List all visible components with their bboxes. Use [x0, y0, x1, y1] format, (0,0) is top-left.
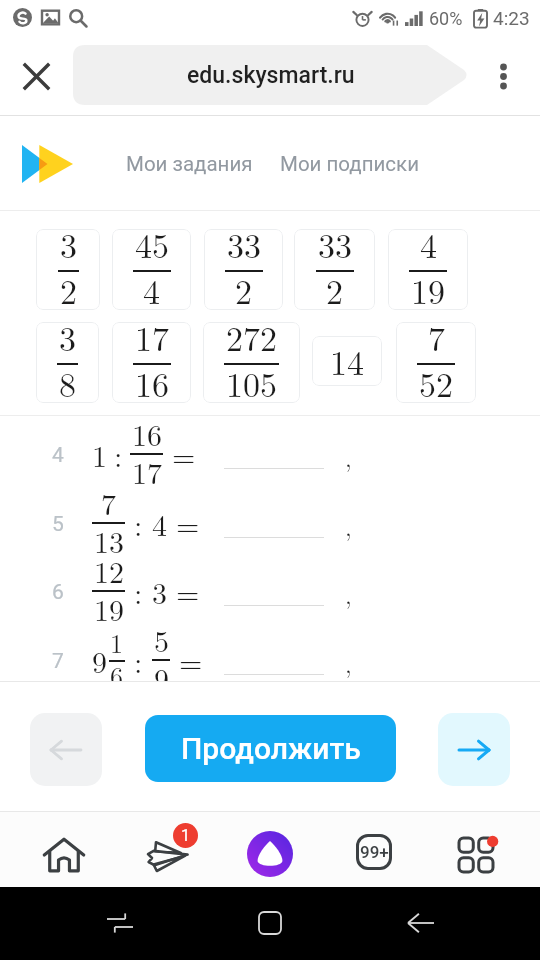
staticText: 9	[92, 639, 107, 682]
button[interactable]: Next	[438, 713, 510, 786]
staticText: 13	[94, 519, 124, 562]
staticText: edu.skysmart.ru	[187, 62, 355, 89]
button[interactable]: Home	[246, 899, 294, 947]
staticText: :	[134, 639, 143, 682]
button[interactable]: Messages	[136, 821, 200, 885]
button[interactable]: Мои подписки	[280, 152, 419, 176]
button[interactable]: Back	[397, 899, 445, 947]
staticText: 16	[132, 412, 162, 455]
button[interactable]: Alice assistant	[240, 824, 300, 884]
staticText: 7	[428, 322, 445, 361]
button[interactable]: 33	[294, 229, 375, 310]
staticText: 2	[235, 266, 252, 310]
staticText: 105	[226, 359, 277, 403]
staticText: =	[172, 433, 196, 476]
staticText: 3	[152, 570, 167, 613]
staticText: 17	[132, 450, 162, 493]
staticText: :	[114, 433, 123, 476]
staticText: 5	[154, 618, 169, 661]
button[interactable]: Продолжить	[145, 715, 396, 782]
staticText: 14	[330, 337, 364, 385]
staticText: 33	[227, 229, 261, 268]
staticText: =	[179, 639, 203, 682]
staticText: 4	[52, 443, 64, 468]
staticText: 99+	[360, 842, 389, 862]
button[interactable]: edu.skysmart.ru	[73, 45, 469, 105]
staticText: ,	[345, 577, 352, 611]
staticText: 7	[52, 649, 64, 674]
staticText: 5	[52, 512, 64, 537]
button[interactable]: 272	[203, 322, 300, 403]
staticText: :	[134, 570, 143, 613]
button[interactable]: More options	[477, 50, 529, 102]
staticText: 1	[181, 826, 190, 845]
button[interactable]: 33	[204, 229, 283, 310]
staticText: 8	[59, 359, 76, 403]
button[interactable]: Apps menu	[446, 825, 506, 885]
staticText: 16	[135, 359, 169, 403]
button[interactable]: Recents	[96, 899, 144, 947]
staticText: 52	[419, 359, 453, 403]
staticText: 19	[411, 266, 445, 310]
staticText: 7	[101, 481, 116, 524]
staticText: 12	[94, 549, 124, 592]
staticText: 6	[52, 580, 64, 605]
staticText: 1	[92, 433, 107, 476]
staticText: 45	[135, 229, 169, 268]
button[interactable]: Мои задания	[126, 152, 253, 176]
button[interactable]: Close tab	[12, 52, 60, 100]
button[interactable]: 3	[36, 229, 100, 310]
staticText: =	[176, 502, 200, 545]
button[interactable]: 4	[388, 229, 468, 310]
staticText: =	[176, 570, 200, 613]
staticText: 19	[94, 587, 124, 630]
staticText: 3	[59, 322, 76, 361]
staticText: 4	[143, 266, 160, 310]
button[interactable]: Home	[34, 825, 94, 885]
staticText: 2	[326, 266, 343, 310]
staticText: ,	[345, 646, 352, 680]
button[interactable]: Tabs	[344, 822, 404, 882]
staticText: 4	[152, 502, 167, 545]
staticText: Продолжить	[181, 731, 361, 766]
button[interactable]: 7	[396, 322, 476, 403]
staticText: ,	[345, 440, 352, 474]
staticText: 9	[154, 656, 169, 682]
staticText: ,	[345, 509, 352, 543]
staticText: 6	[110, 657, 124, 682]
button[interactable]: 14	[312, 336, 382, 386]
staticText: 60%	[429, 8, 463, 29]
staticText: 33	[318, 229, 352, 268]
staticText: :	[134, 502, 143, 545]
button[interactable]: 3	[36, 322, 99, 403]
staticText: 17	[135, 322, 169, 361]
staticText: 272	[226, 322, 277, 361]
button[interactable]: 45	[112, 229, 191, 310]
button[interactable]: Previous	[30, 713, 102, 786]
staticText: 4	[420, 229, 437, 268]
staticText: 4:23	[493, 7, 530, 29]
staticText: 3	[60, 229, 77, 268]
staticText: 2	[60, 266, 77, 310]
button[interactable]: 17	[112, 322, 191, 403]
staticText: 1	[110, 624, 124, 661]
